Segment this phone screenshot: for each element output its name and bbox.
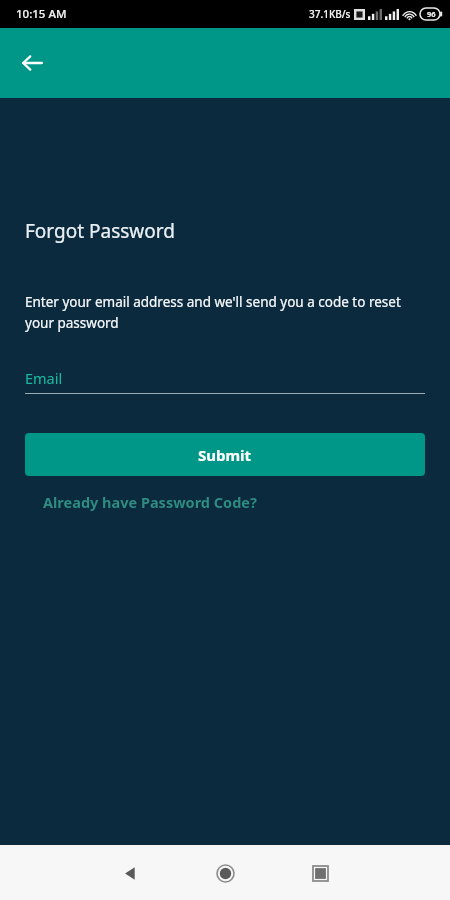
- button[interactable]: Back: [10, 41, 54, 85]
- staticText: 96: [427, 9, 436, 19]
- button[interactable]: Recent apps: [296, 849, 344, 897]
- staticText: 37.1KB/s: [309, 7, 351, 21]
- button[interactable]: Submit: [25, 433, 425, 476]
- staticText: 10:15 AM: [16, 6, 67, 22]
- staticText: Email: [25, 368, 63, 388]
- button[interactable]: Home: [201, 849, 249, 897]
- staticText: Submit: [198, 445, 252, 465]
- button[interactable]: Back: [106, 849, 154, 897]
- staticText: Enter your email address and we'll send …: [25, 293, 425, 332]
- button[interactable]: Already have Password Code?: [43, 488, 257, 516]
- button[interactable]: Email: [25, 368, 425, 394]
- staticText: Already have Password Code?: [43, 492, 257, 512]
- staticText: Forgot Password: [25, 218, 175, 244]
